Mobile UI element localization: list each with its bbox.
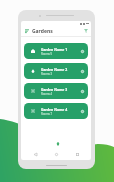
staticText: Rooms 3 — [41, 72, 52, 76]
staticText: Rooms 7 — [41, 112, 52, 116]
button[interactable]: Open Garden Name 4 — [81, 110, 84, 113]
staticText: Rooms 5 — [41, 52, 52, 56]
button[interactable]: Recents — [74, 151, 80, 157]
button[interactable]: Garden Name 4 — [24, 103, 88, 119]
button[interactable]: Open Garden Name 2 — [81, 70, 84, 73]
button[interactable]: Back — [32, 151, 38, 157]
button[interactable]: Filter — [83, 28, 89, 34]
button[interactable]: Garden Name 2 — [24, 63, 88, 79]
button[interactable]: Open Garden Name 1 — [81, 50, 84, 53]
button[interactable]: Add garden — [53, 139, 62, 148]
staticText: Garden Name 1 — [41, 47, 68, 52]
staticText: Rooms 4 — [41, 92, 52, 96]
staticText: Garden Name 4 — [41, 107, 68, 112]
staticText: Gardens — [32, 28, 53, 35]
button[interactable]: Menu — [24, 28, 30, 34]
button[interactable]: Open Garden Name 3 — [81, 90, 84, 93]
button[interactable]: Home — [53, 151, 59, 157]
staticText: Garden Name 3 — [41, 87, 68, 92]
staticText: Garden Name 2 — [41, 67, 68, 72]
button[interactable]: Garden Name 3 — [24, 83, 88, 99]
button[interactable]: Garden Name 1 — [24, 43, 88, 59]
